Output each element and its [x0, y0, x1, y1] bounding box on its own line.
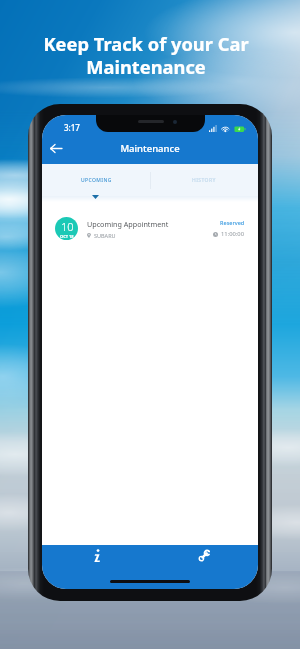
button[interactable]: Maintenance	[150, 545, 258, 565]
staticText: 10	[61, 219, 74, 234]
button[interactable]: 10	[42, 210, 258, 247]
staticText: 3:17	[64, 122, 80, 133]
staticText: Upcoming Appointment	[87, 219, 169, 229]
staticText: 11:00:00	[221, 230, 245, 238]
button[interactable]: UPCOMING	[42, 164, 150, 196]
staticText: Reserved	[220, 219, 245, 226]
staticText: HISTORY	[192, 177, 216, 184]
button[interactable]: Info	[42, 545, 150, 565]
button[interactable]: HISTORY	[150, 164, 258, 196]
button[interactable]: Back	[42, 133, 70, 164]
staticText: SUBARU	[94, 232, 116, 239]
staticText: UPCOMING	[81, 177, 112, 184]
staticText: Keep Track of your Car Maintenance	[43, 31, 249, 80]
staticText: Maintenance	[70, 142, 230, 155]
staticText: OCT 18	[60, 234, 74, 239]
